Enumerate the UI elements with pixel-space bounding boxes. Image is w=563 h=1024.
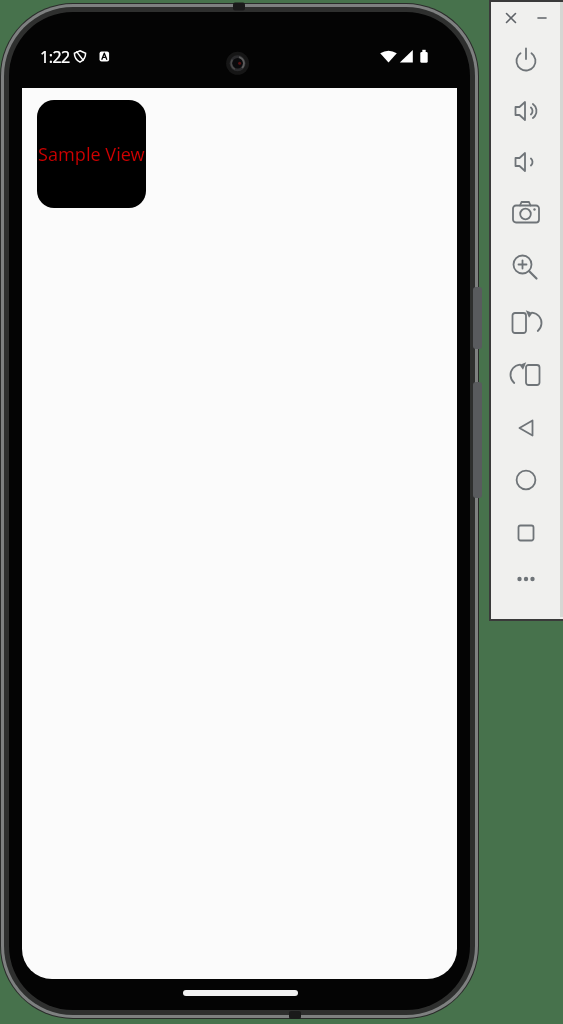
button[interactable] [508,144,544,180]
button[interactable] [508,561,544,597]
button[interactable] [508,93,544,129]
button[interactable] [508,515,544,551]
staticText: Sample View [38,142,145,167]
button[interactable] [508,196,544,232]
button[interactable] [508,410,544,446]
button[interactable]: Sample View [37,100,146,208]
button[interactable] [508,42,544,78]
button[interactable] [508,305,544,341]
staticText: 1:22 [40,46,70,68]
button[interactable] [508,249,544,285]
button[interactable] [508,462,544,498]
button[interactable] [508,357,544,393]
